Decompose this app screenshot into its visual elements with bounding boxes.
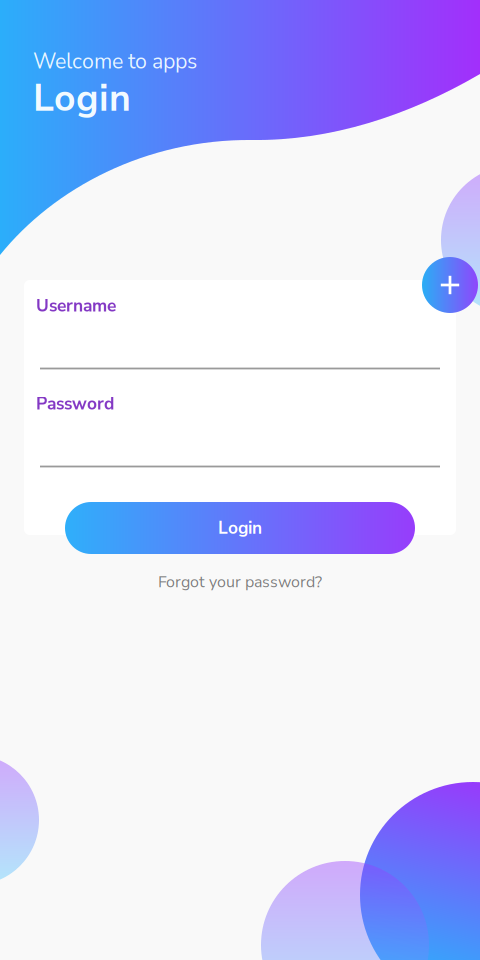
staticText: Forgot your password? xyxy=(158,571,322,593)
button[interactable]: Forgot your password? xyxy=(140,570,340,594)
staticText: Login xyxy=(218,516,262,540)
staticText: Welcome to apps xyxy=(33,47,197,76)
staticText: Login xyxy=(33,73,131,124)
staticText: Password xyxy=(36,392,114,416)
staticText: Username xyxy=(36,294,116,318)
button[interactable]: Login xyxy=(65,502,415,554)
button[interactable]: Add xyxy=(422,257,478,313)
